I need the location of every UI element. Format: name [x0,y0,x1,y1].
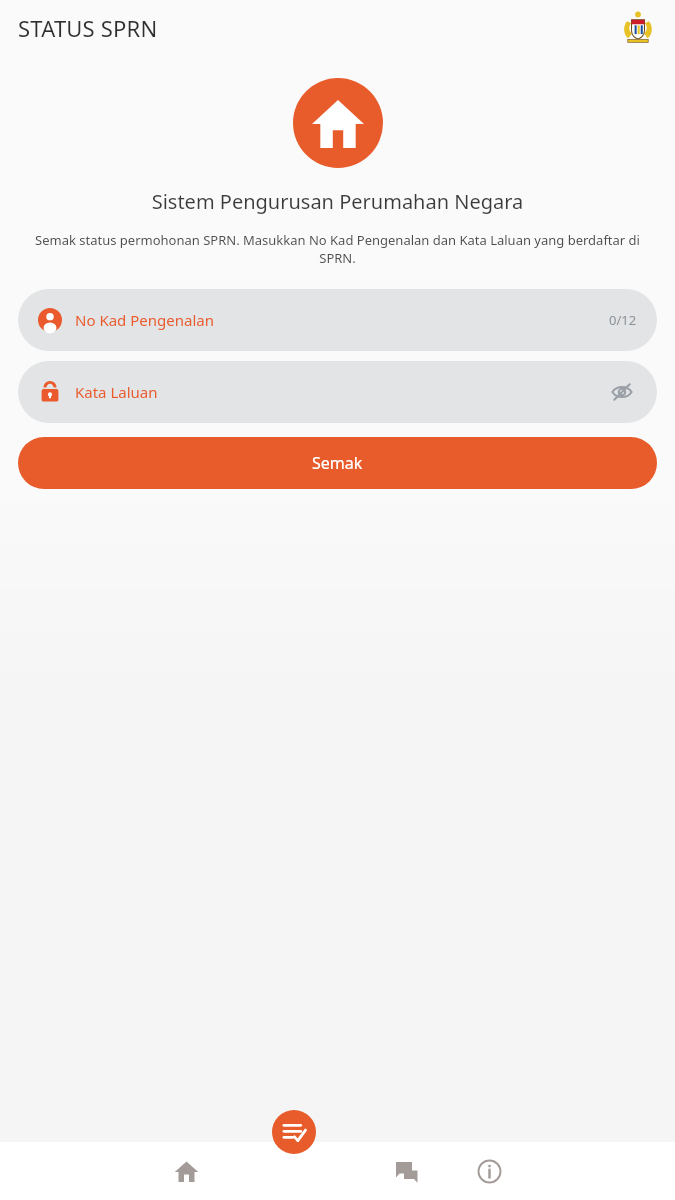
button[interactable]: No Kad Pengenalan [18,289,657,351]
staticText: No Kad Pengenalan [75,310,214,330]
button[interactable]: Semak [18,437,657,489]
staticText: Sistem Pengurusan Perumahan Negara [0,188,675,215]
staticText: 0/12 [609,311,637,329]
button[interactable]: Maklumat [466,1148,512,1194]
button[interactable]: Utama [163,1148,209,1194]
button[interactable]: Tunjuk kata laluan [607,377,637,407]
staticText: STATUS SPRN [18,13,158,43]
button[interactable]: Semak Status [272,1110,316,1154]
button[interactable]: Mesej [383,1148,429,1194]
button[interactable]: Kata Laluan [18,361,657,423]
staticText: Semak status permohonan SPRN. Masukkan N… [22,231,653,267]
button[interactable]: Jata Negara [621,11,655,45]
staticText: Kata Laluan [75,382,158,402]
staticText: Semak [312,452,363,474]
